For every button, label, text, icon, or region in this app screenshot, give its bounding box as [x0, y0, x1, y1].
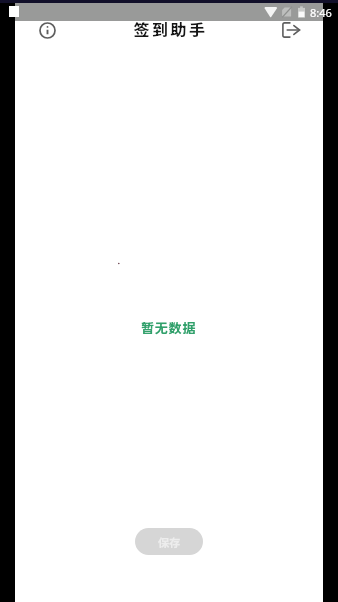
button[interactable]: Info — [34, 21, 60, 40]
staticText: 保存 — [158, 534, 180, 550]
button[interactable]: Logout — [278, 20, 304, 39]
staticText: 签到助手 — [133, 17, 208, 40]
staticText: 暂无数据 — [141, 318, 197, 337]
button[interactable]: 保存 — [135, 528, 203, 555]
staticText: 8:46 — [310, 5, 332, 20]
